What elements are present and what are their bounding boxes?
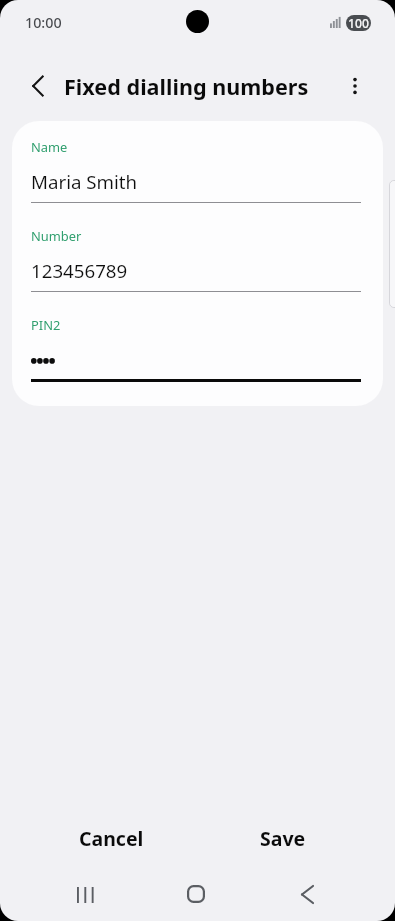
button[interactable]: Save: [226, 812, 339, 864]
button[interactable]: Name: [12, 135, 383, 217]
staticText: Maria Smith: [31, 169, 138, 194]
staticText: 123456789: [31, 258, 128, 283]
staticText: Cancel: [79, 825, 144, 852]
button[interactable]: Cancel: [55, 812, 168, 864]
staticText: Fixed dialling numbers: [64, 72, 309, 101]
button[interactable]: Number: [12, 224, 383, 306]
staticText: 100: [348, 15, 369, 31]
button[interactable]: Home: [168, 870, 224, 918]
staticText: PIN2: [31, 316, 61, 334]
staticText: Number: [31, 227, 82, 245]
button[interactable]: Back: [20, 66, 60, 106]
staticText: Save: [260, 825, 306, 852]
button[interactable]: More options: [335, 66, 375, 106]
staticText: 10:00: [25, 13, 62, 32]
staticText: Name: [31, 138, 68, 156]
button[interactable]: Back: [279, 870, 335, 918]
button[interactable]: PIN2: [12, 313, 383, 395]
button[interactable]: Recents: [58, 871, 114, 919]
